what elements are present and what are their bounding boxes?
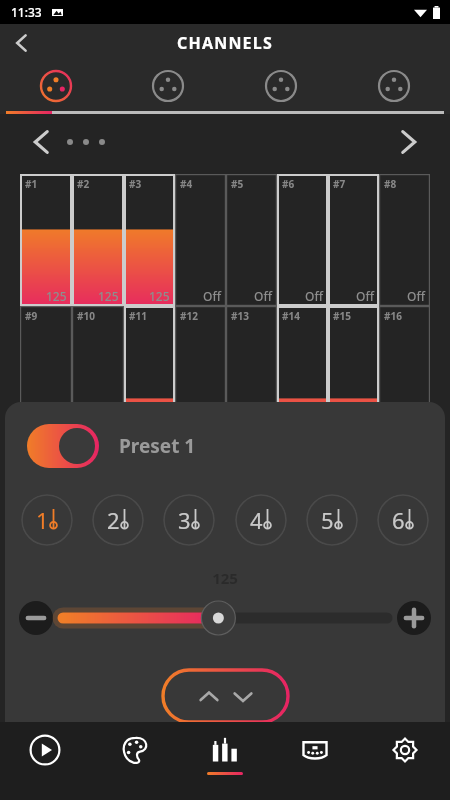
button[interactable]: Back: [0, 24, 44, 62]
staticText: 3: [178, 505, 191, 535]
button[interactable]: #2: [72, 174, 124, 306]
staticText: Off: [407, 288, 425, 304]
staticText: 2: [107, 505, 120, 535]
button[interactable]: Stage: [270, 722, 360, 800]
button[interactable]: #9: [20, 306, 72, 438]
button[interactable]: Increase: [397, 601, 431, 635]
button[interactable]: Device 1: [0, 62, 112, 110]
button[interactable]: 3: [163, 494, 215, 546]
button[interactable]: 4: [235, 494, 287, 546]
staticText: #9: [25, 309, 38, 323]
button[interactable]: #16: [379, 306, 430, 438]
button[interactable]: Device 3: [224, 62, 337, 110]
staticText: 6: [392, 505, 405, 535]
staticText: #13: [231, 309, 249, 323]
button[interactable]: Device 4: [337, 62, 450, 110]
button[interactable]: 2: [92, 494, 144, 546]
staticText: #6: [282, 177, 295, 191]
staticText: #15: [333, 309, 351, 323]
button[interactable]: #8: [379, 174, 430, 306]
staticText: #3: [129, 177, 142, 191]
button[interactable]: Colors: [90, 722, 180, 800]
staticText: #12: [180, 309, 198, 323]
staticText: 5: [321, 505, 334, 535]
button[interactable]: #1: [20, 174, 72, 306]
button[interactable]: Adjust up or down: [163, 670, 288, 722]
button[interactable]: 5: [306, 494, 358, 546]
staticText: #14: [282, 309, 300, 323]
button[interactable]: #14: [277, 306, 328, 438]
button[interactable]: Preset enabled: [27, 424, 99, 468]
staticText: 1: [36, 505, 49, 535]
staticText: #11: [129, 309, 147, 323]
staticText: 4: [250, 505, 263, 535]
staticText: CHANNELS: [177, 32, 273, 54]
staticText: Preset 1: [119, 433, 196, 459]
staticText: #10: [77, 309, 95, 323]
button[interactable]: #6: [277, 174, 328, 306]
staticText: #5: [231, 177, 244, 191]
staticText: 125: [149, 288, 170, 304]
button[interactable]: #3: [124, 174, 175, 306]
button[interactable]: [59, 594, 391, 642]
staticText: Off: [305, 288, 323, 304]
button[interactable]: #12: [175, 306, 226, 438]
button[interactable]: Play: [0, 722, 90, 800]
button[interactable]: Next page: [388, 122, 428, 162]
staticText: #7: [333, 177, 346, 191]
staticText: 125: [46, 288, 67, 304]
button[interactable]: Previous page: [22, 122, 62, 162]
staticText: 11:33: [11, 4, 42, 20]
staticText: 125: [98, 288, 119, 304]
button[interactable]: #11: [124, 306, 175, 438]
staticText: Off: [356, 288, 374, 304]
button[interactable]: #13: [226, 306, 277, 438]
button[interactable]: #5: [226, 174, 277, 306]
button[interactable]: Decrease: [19, 601, 53, 635]
button[interactable]: Device 2: [112, 62, 224, 110]
staticText: #1: [25, 177, 38, 191]
button[interactable]: #7: [328, 174, 379, 306]
staticText: #2: [77, 177, 90, 191]
staticText: #8: [384, 177, 397, 191]
button[interactable]: Settings: [360, 722, 450, 800]
button[interactable]: #15: [328, 306, 379, 438]
staticText: Off: [203, 288, 221, 304]
button[interactable]: #10: [72, 306, 124, 438]
button[interactable]: #4: [175, 174, 226, 306]
staticText: #4: [180, 177, 193, 191]
button[interactable]: 6: [377, 494, 429, 546]
button[interactable]: 1: [21, 494, 73, 546]
staticText: Off: [254, 288, 272, 304]
button[interactable]: Channels: [180, 722, 270, 800]
staticText: #16: [384, 309, 402, 323]
